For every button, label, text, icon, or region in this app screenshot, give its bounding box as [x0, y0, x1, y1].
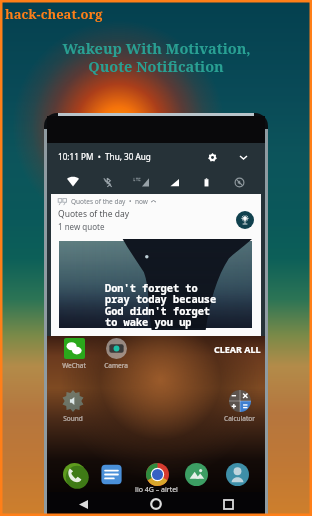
staticText: Wakeup With Motivation, — [62, 38, 251, 58]
button[interactable]: Recents — [192, 492, 265, 516]
button[interactable]: Photos — [184, 462, 208, 486]
staticText: hack-cheat.org — [5, 5, 103, 23]
staticText: Quotes of the day — [58, 208, 130, 220]
button[interactable]: Calculator — [224, 390, 255, 423]
button[interactable]: Settings — [204, 149, 220, 165]
staticText: now — [135, 197, 148, 206]
button[interactable]: Sound — [62, 390, 84, 423]
button[interactable]: WeChat — [62, 337, 86, 370]
staticText: 1 new quote — [58, 221, 105, 232]
button[interactable]: CLEAR ALL — [211, 341, 264, 357]
button[interactable]: Chrome — [145, 462, 169, 486]
staticText: to wake you up — [105, 315, 192, 329]
staticText: Jio 4G – airtel — [135, 485, 178, 495]
staticText: Camera — [104, 361, 128, 370]
staticText: CLEAR ALL — [214, 343, 261, 355]
staticText: Sound — [63, 414, 83, 423]
button[interactable]: Contacts — [225, 462, 249, 486]
button[interactable]: Quotes of the day — [51, 194, 261, 336]
staticText: pray today because — [105, 292, 217, 306]
staticText: Don't forget to — [105, 281, 198, 295]
staticText: • — [129, 197, 132, 206]
button[interactable]: Back — [47, 492, 119, 516]
staticText: Quotes of the day — [71, 197, 126, 206]
button[interactable]: Camera — [104, 337, 128, 370]
button[interactable]: Phone — [62, 462, 86, 486]
staticText: Quote Notification — [88, 56, 224, 76]
staticText: God didn't forget — [105, 304, 211, 318]
button[interactable]: Messages — [99, 462, 123, 486]
staticText: 10:11 PM • Thu, 30 Aug — [58, 151, 151, 162]
staticText: Calculator — [224, 414, 255, 423]
button[interactable]: Expand quick settings — [235, 149, 251, 165]
button[interactable]: Home — [119, 492, 192, 516]
staticText: WeChat — [62, 361, 86, 370]
